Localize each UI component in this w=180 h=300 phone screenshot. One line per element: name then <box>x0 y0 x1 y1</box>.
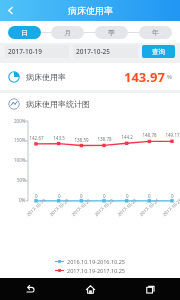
staticText: 142.67 <box>29 135 44 141</box>
staticText: 2017-10-22 <box>93 197 115 217</box>
staticText: 2017-10-25 <box>76 47 110 56</box>
staticText: 138.59 <box>74 137 89 143</box>
button[interactable]: Home <box>60 278 120 300</box>
button[interactable]: Back <box>0 0 21 21</box>
staticText: 2016.10.19-2016.10.25 <box>67 258 126 265</box>
staticText: 200% <box>14 118 26 124</box>
staticText: 日 <box>21 28 28 37</box>
staticText: 138.78 <box>97 136 112 142</box>
staticText: 149.17 <box>165 132 180 138</box>
button[interactable]: 月 <box>51 26 84 39</box>
button[interactable]: 病床使用率 <box>0 63 180 90</box>
staticText: 0 <box>35 193 38 199</box>
staticText: 年 <box>152 28 159 37</box>
staticText: 2017-10-19 <box>25 197 47 217</box>
staticText: 50% <box>17 177 26 183</box>
staticText: 100% <box>14 157 26 163</box>
button[interactable]: Back <box>0 278 60 300</box>
staticText: 2017-10-20 <box>48 197 70 217</box>
staticText: 0 <box>148 193 151 199</box>
button[interactable]: 查询 <box>142 45 175 58</box>
button[interactable]: 年 <box>139 26 172 39</box>
button[interactable]: 日 <box>8 26 41 39</box>
staticText: % <box>167 73 172 81</box>
staticText: 144.2 <box>121 134 133 140</box>
staticText: 148.78 <box>142 132 157 138</box>
staticText: 0 <box>103 193 106 199</box>
staticText: 2017-10-21 <box>70 197 92 217</box>
staticText: 0% <box>19 197 26 203</box>
staticText: 150% <box>14 137 26 143</box>
button[interactable]: 2017-10-25 <box>73 45 138 58</box>
button[interactable]: Recents <box>120 278 180 300</box>
staticText: 0 <box>80 193 83 199</box>
staticText: 143.97 <box>124 68 165 86</box>
staticText: 0 <box>171 193 174 199</box>
staticText: 2017-10-19 <box>8 47 42 56</box>
button[interactable]: 季 <box>95 26 128 39</box>
staticText: 季 <box>108 28 115 37</box>
staticText: 2017-10-23 <box>116 197 138 217</box>
button[interactable]: 2017-10-19 <box>5 45 69 58</box>
staticText: 病床使用率统计图 <box>26 99 90 109</box>
staticText: 月 <box>64 28 71 37</box>
staticText: 0 <box>126 193 129 199</box>
staticText: 143.5 <box>53 135 65 141</box>
staticText: 查询 <box>152 48 165 56</box>
staticText: 0 <box>58 193 61 199</box>
staticText: 病床使用率 <box>68 5 113 16</box>
staticText: 病床使用率 <box>26 72 66 82</box>
staticText: 2017-10-25 <box>161 197 180 217</box>
staticText: 2017.10.19-2017.10.25 <box>67 267 126 274</box>
staticText: 2017-10-24 <box>138 197 160 217</box>
